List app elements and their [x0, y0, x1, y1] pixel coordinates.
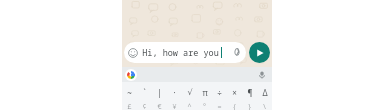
staticText: € — [157, 102, 162, 110]
button[interactable]: ¶ — [242, 82, 257, 102]
button[interactable]: Emoji — [127, 47, 139, 59]
staticText: £ — [127, 102, 132, 110]
staticText: ^ — [187, 102, 192, 110]
staticText: · — [173, 87, 176, 98]
staticText: { — [233, 102, 236, 110]
button[interactable]: ÷ — [212, 82, 227, 102]
button[interactable]: Δ — [257, 82, 272, 102]
staticText: = — [217, 102, 222, 110]
staticText: ` — [143, 87, 146, 98]
staticText: ÷ — [217, 87, 222, 98]
button[interactable]: · — [167, 82, 182, 102]
staticText: ¥ — [172, 102, 177, 110]
staticText: \ — [263, 102, 266, 110]
staticText: ~ — [127, 87, 132, 98]
button[interactable]: π — [197, 82, 212, 102]
button[interactable]: × — [227, 82, 242, 102]
button[interactable]: | — [152, 82, 167, 102]
button[interactable]: ~ — [122, 82, 137, 102]
staticText: π — [202, 87, 208, 98]
button[interactable]: Attach — [230, 46, 243, 59]
button[interactable]: ` — [137, 82, 152, 102]
staticText: × — [232, 87, 237, 98]
button[interactable]: Voice input — [255, 68, 269, 82]
staticText: Δ — [262, 87, 268, 98]
staticText: ¶ — [247, 87, 253, 98]
staticText: | — [157, 87, 162, 98]
staticText: Hi, how are you — [142, 47, 219, 59]
staticText: } — [248, 102, 251, 110]
button[interactable]: Emoji — [124, 42, 246, 63]
staticText: √ — [187, 88, 193, 97]
button[interactable]: Google — [125, 69, 137, 81]
staticText: ° — [203, 102, 206, 110]
button[interactable]: Send — [249, 42, 270, 63]
button[interactable]: √ — [182, 82, 197, 102]
staticText: ¢ — [142, 102, 147, 110]
